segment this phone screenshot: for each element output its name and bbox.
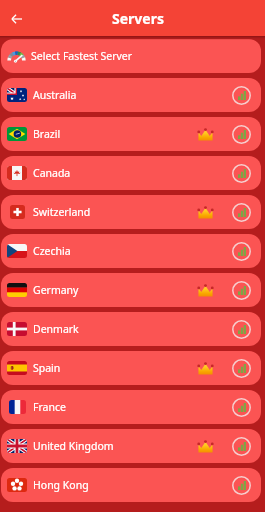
button[interactable]: Switzerland bbox=[1, 195, 261, 229]
button[interactable]: Czechia bbox=[1, 234, 261, 268]
staticText: Spain bbox=[33, 361, 61, 375]
button[interactable]: Australia bbox=[1, 78, 261, 112]
staticText: Hong Kong bbox=[33, 478, 89, 492]
button[interactable]: United Kingdom bbox=[1, 429, 261, 463]
button[interactable]: France bbox=[1, 390, 261, 424]
staticText: Germany bbox=[33, 283, 79, 297]
staticText: Servers bbox=[112, 9, 164, 28]
button[interactable]: Back bbox=[5, 8, 27, 30]
staticText: United Kingdom bbox=[33, 439, 114, 453]
button[interactable]: Germany bbox=[1, 273, 261, 307]
button[interactable]: Denmark bbox=[1, 312, 261, 346]
staticText: Select Fastest Server bbox=[31, 49, 133, 63]
button[interactable]: Brazil bbox=[1, 117, 261, 151]
staticText: Denmark bbox=[33, 322, 79, 336]
staticText: Switzerland bbox=[33, 205, 91, 219]
staticText: Australia bbox=[33, 88, 77, 102]
button[interactable]: Spain bbox=[1, 351, 261, 385]
staticText: Czechia bbox=[33, 244, 71, 258]
button[interactable]: Canada bbox=[1, 156, 261, 190]
staticText: France bbox=[33, 400, 66, 414]
staticText: Canada bbox=[33, 166, 71, 180]
staticText: Brazil bbox=[33, 127, 61, 141]
button[interactable]: Hong Kong bbox=[1, 468, 261, 502]
button[interactable]: Select Fastest Server bbox=[1, 39, 261, 73]
